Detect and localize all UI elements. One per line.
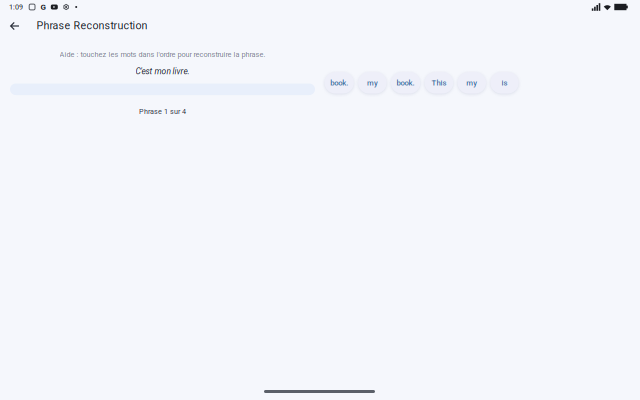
staticText: Phrase Reconstruction xyxy=(36,19,147,32)
staticText: book. xyxy=(397,78,415,87)
staticText: This xyxy=(431,78,446,87)
staticText: Aide : touchez les mots dans l'ordre pou… xyxy=(59,50,265,59)
staticText: Phrase 1 sur 4 xyxy=(139,107,186,116)
staticText: C'est mon livre. xyxy=(135,67,189,76)
button[interactable]: my xyxy=(358,72,387,93)
button[interactable]: book. xyxy=(324,72,354,93)
button[interactable]: is xyxy=(490,72,519,93)
staticText: G xyxy=(40,2,45,12)
staticText: my xyxy=(466,78,477,87)
button[interactable]: This xyxy=(424,72,453,93)
staticText: my xyxy=(367,78,378,87)
button[interactable]: book. xyxy=(391,72,420,93)
button[interactable]: Back xyxy=(3,15,25,37)
staticText: 1:09 xyxy=(9,3,23,11)
staticText: book. xyxy=(330,78,348,87)
button[interactable]: my xyxy=(457,72,486,93)
staticText: is xyxy=(501,78,507,87)
